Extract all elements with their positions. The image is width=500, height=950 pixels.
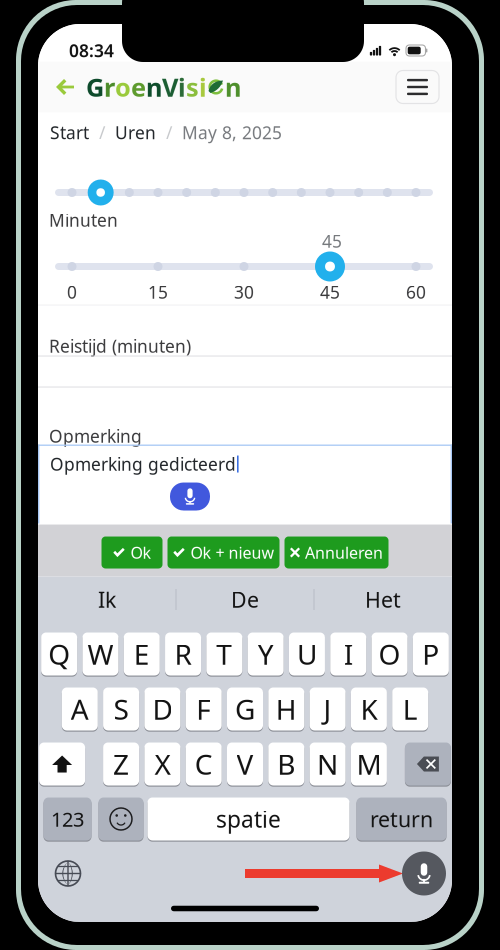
button[interactable]: Q xyxy=(41,631,77,677)
staticText: Uren xyxy=(115,121,156,144)
button[interactable]: U xyxy=(289,631,325,677)
staticText: i xyxy=(178,70,186,104)
staticText: return xyxy=(370,805,433,833)
button[interactable]: M xyxy=(351,741,387,787)
button[interactable]: T xyxy=(206,631,242,677)
button[interactable]: F xyxy=(186,686,222,732)
staticText: E xyxy=(134,635,150,673)
button[interactable]: Ok + nieuw xyxy=(167,536,279,568)
button[interactable]: S xyxy=(103,686,139,732)
button[interactable]: B xyxy=(268,741,304,787)
staticText: V xyxy=(236,745,253,783)
button[interactable]: Ik xyxy=(38,576,175,622)
button[interactable]: Uren xyxy=(115,115,156,149)
button[interactable]: Y xyxy=(248,631,284,677)
button[interactable]: E xyxy=(124,631,160,677)
staticText: e xyxy=(131,70,146,104)
staticText: K xyxy=(360,690,377,728)
button[interactable]: 123 xyxy=(43,796,91,842)
staticText: De xyxy=(231,585,259,614)
staticText: Het xyxy=(365,585,401,614)
staticText: spatie xyxy=(216,804,281,834)
button[interactable]: spatie xyxy=(147,796,349,842)
button[interactable]: Menu xyxy=(396,70,439,103)
button[interactable]: Dictate xyxy=(170,482,210,510)
staticText: L xyxy=(403,690,418,728)
button[interactable]: C xyxy=(186,741,222,787)
button[interactable]: N xyxy=(310,741,346,787)
staticText: G xyxy=(86,70,104,104)
staticText: Y xyxy=(258,635,274,673)
button[interactable]: Dictation xyxy=(402,851,446,895)
button[interactable]: Annuleren xyxy=(284,536,388,568)
button[interactable]: Z xyxy=(103,741,139,787)
staticText: B xyxy=(277,745,295,783)
staticText: J xyxy=(324,690,332,728)
staticText: Opmerking gedicteerd xyxy=(50,452,236,475)
staticText: I xyxy=(344,635,353,673)
staticText: U xyxy=(297,635,317,673)
staticText: Ok xyxy=(130,542,151,563)
staticText: n xyxy=(146,70,162,104)
button[interactable]: J xyxy=(310,686,346,732)
button[interactable]: O xyxy=(372,631,408,677)
staticText: W xyxy=(87,635,113,673)
staticText: 08:34 xyxy=(69,39,114,62)
button[interactable]: K xyxy=(351,686,387,732)
staticText: Z xyxy=(113,745,129,783)
staticText: P xyxy=(422,635,439,673)
button[interactable]: V xyxy=(227,741,263,787)
staticText: S xyxy=(114,690,129,728)
staticText: T xyxy=(216,635,232,673)
button[interactable]: A xyxy=(62,686,98,732)
staticText: s xyxy=(186,70,199,104)
button[interactable]: H xyxy=(268,686,304,732)
button[interactable]: P xyxy=(413,631,449,677)
staticText: V xyxy=(162,70,178,104)
staticText: R xyxy=(175,635,192,673)
staticText: A xyxy=(71,690,89,728)
staticText: / xyxy=(166,121,172,144)
button[interactable]: Het xyxy=(314,576,451,622)
staticText: Minuten xyxy=(49,208,118,231)
button[interactable]: R xyxy=(165,631,201,677)
staticText: Annuleren xyxy=(305,542,383,563)
button[interactable]: Ok xyxy=(101,536,162,568)
staticText: 45 xyxy=(320,280,340,303)
staticText: H xyxy=(276,690,297,728)
staticText: / xyxy=(99,121,105,144)
button[interactable]: X xyxy=(144,741,180,787)
staticText: 0 xyxy=(67,280,77,303)
staticText: o xyxy=(115,70,131,104)
button[interactable]: G xyxy=(227,686,263,732)
staticText: Ok + nieuw xyxy=(190,542,274,563)
button[interactable]: Back xyxy=(48,70,82,104)
button[interactable]: Emoji xyxy=(98,796,143,842)
staticText: Ik xyxy=(98,585,116,614)
staticText: O xyxy=(379,635,401,673)
staticText: N xyxy=(317,745,338,783)
staticText: 30 xyxy=(234,280,254,303)
staticText: Q xyxy=(48,635,70,673)
staticText: i xyxy=(199,70,207,104)
staticText: Reistijd (minuten) xyxy=(49,334,191,357)
button[interactable]: I xyxy=(330,631,366,677)
button[interactable]: W xyxy=(82,631,118,677)
staticText: F xyxy=(196,690,211,728)
staticText: X xyxy=(154,745,170,783)
staticText: n xyxy=(225,70,241,104)
button[interactable]: Start xyxy=(50,115,89,149)
staticText: 60 xyxy=(406,280,426,303)
staticText: 15 xyxy=(148,280,168,303)
button[interactable]: Delete xyxy=(405,741,451,787)
button[interactable]: De xyxy=(176,576,313,622)
staticText: M xyxy=(356,745,381,783)
staticText: Start xyxy=(50,121,89,144)
button[interactable]: L xyxy=(392,686,428,732)
button[interactable]: Language xyxy=(49,854,87,892)
button[interactable]: D xyxy=(144,686,180,732)
button[interactable]: return xyxy=(356,796,446,842)
staticText: 123 xyxy=(51,806,84,832)
staticText: r xyxy=(104,70,115,104)
button[interactable]: Shift xyxy=(39,741,85,787)
